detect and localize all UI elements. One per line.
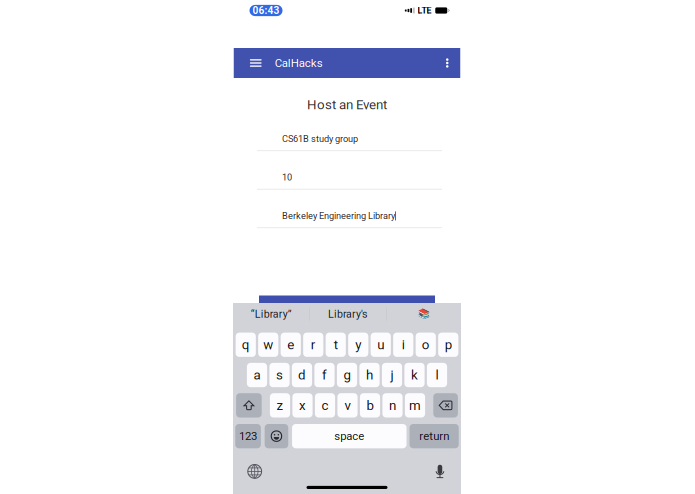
- staticText: CalHacks: [275, 56, 323, 70]
- staticText: Berkeley Engineering Library: [282, 210, 395, 221]
- button[interactable]: “Library”: [233, 303, 309, 325]
- button[interactable]: a: [247, 363, 267, 387]
- staticText: Library's: [328, 308, 368, 320]
- staticText: 06:43: [252, 5, 279, 16]
- button[interactable]: l: [427, 363, 447, 387]
- staticText: n: [389, 397, 396, 413]
- button[interactable]: s: [269, 363, 290, 387]
- button[interactable]: n: [382, 393, 403, 417]
- button[interactable]: Menu: [244, 48, 268, 78]
- button[interactable]: r: [303, 333, 323, 357]
- staticText: t: [334, 337, 338, 352]
- button[interactable]: y: [348, 333, 368, 357]
- staticText: r: [311, 337, 316, 352]
- staticText: j: [390, 367, 393, 383]
- button[interactable]: j: [382, 363, 402, 387]
- staticText: s: [276, 367, 283, 383]
- staticText: m: [409, 397, 421, 413]
- button[interactable]: return: [410, 424, 459, 448]
- button[interactable]: x: [292, 393, 313, 417]
- button[interactable]: Delete: [433, 393, 458, 417]
- staticText: o: [422, 337, 430, 352]
- staticText: Host an Event: [307, 97, 387, 113]
- button[interactable]: t: [326, 333, 346, 357]
- staticText: g: [343, 367, 350, 383]
- button[interactable]: o: [416, 333, 436, 357]
- button[interactable]: c: [315, 393, 335, 417]
- button[interactable]: More options: [436, 48, 458, 78]
- button[interactable]: h: [359, 363, 380, 387]
- staticText: b: [366, 397, 373, 413]
- staticText: k: [411, 367, 418, 383]
- staticText: l: [435, 367, 438, 383]
- staticText: d: [298, 367, 306, 383]
- button[interactable]: Emoji suggestion: [387, 303, 461, 325]
- staticText: h: [366, 367, 373, 383]
- button[interactable]: b: [360, 393, 380, 417]
- staticText: p: [445, 337, 452, 352]
- button[interactable]: w: [258, 333, 278, 357]
- button[interactable]: i: [393, 333, 413, 357]
- button[interactable]: 10: [233, 151, 461, 190]
- staticText: f: [322, 367, 327, 383]
- button[interactable]: Shift: [236, 393, 262, 417]
- button[interactable]: q: [236, 333, 256, 357]
- staticText: v: [344, 397, 350, 413]
- staticText: u: [377, 337, 384, 352]
- button[interactable]: Berkeley Engineering Library: [233, 190, 461, 228]
- button[interactable]: Next keyboard: [247, 464, 262, 479]
- button[interactable]: v: [337, 393, 358, 417]
- staticText: x: [299, 397, 306, 413]
- button[interactable]: p: [438, 333, 458, 357]
- staticText: z: [276, 397, 283, 413]
- staticText: LTE: [418, 5, 432, 16]
- staticText: y: [355, 337, 361, 352]
- staticText: 10: [282, 172, 292, 183]
- button[interactable]: u: [371, 333, 391, 357]
- staticText: q: [242, 337, 250, 352]
- button[interactable]: z: [270, 393, 290, 417]
- staticText: CS61B study group: [282, 133, 358, 144]
- button[interactable]: d: [292, 363, 312, 387]
- button[interactable]: e: [281, 333, 301, 357]
- button[interactable]: Emoji keyboard: [265, 424, 288, 448]
- staticText: c: [321, 397, 328, 413]
- staticText: 📚: [418, 308, 430, 320]
- staticText: 123: [239, 429, 257, 443]
- button[interactable]: 123: [235, 424, 261, 448]
- staticText: e: [287, 337, 294, 352]
- staticText: return: [419, 429, 449, 443]
- button[interactable]: space: [292, 424, 407, 448]
- staticText: w: [263, 337, 273, 352]
- button[interactable]: m: [405, 393, 425, 417]
- staticText: “Library”: [251, 308, 292, 320]
- button[interactable]: Dictation: [434, 464, 445, 479]
- button[interactable]: g: [337, 363, 357, 387]
- staticText: space: [334, 429, 364, 443]
- button[interactable]: f: [314, 363, 335, 387]
- button[interactable]: Library's: [310, 303, 386, 325]
- button[interactable]: CS61B study group: [233, 113, 461, 151]
- button[interactable]: k: [404, 363, 425, 387]
- staticText: a: [253, 367, 260, 383]
- staticText: i: [402, 337, 405, 352]
